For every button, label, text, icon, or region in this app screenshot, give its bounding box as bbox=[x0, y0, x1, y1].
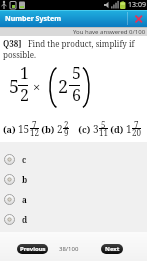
staticText: possible. bbox=[3, 49, 36, 60]
staticText: Q38] Find the product, simplify if bbox=[3, 38, 135, 49]
staticText: 2 bbox=[58, 74, 69, 99]
button[interactable]: d bbox=[0, 209, 147, 229]
staticText: (c) bbox=[69, 123, 93, 135]
staticText: 2 bbox=[64, 119, 69, 130]
staticText: 15 bbox=[18, 122, 30, 136]
staticText: 1 bbox=[20, 62, 29, 84]
button[interactable]: Next bbox=[101, 244, 123, 254]
staticText: 9 bbox=[64, 127, 69, 138]
staticText: 38/100 bbox=[59, 245, 79, 253]
staticText: 5 bbox=[72, 62, 81, 84]
staticText: d bbox=[22, 214, 28, 225]
staticText: 7 bbox=[32, 119, 37, 130]
staticText: 6 bbox=[72, 84, 81, 106]
staticText: You have answered 0/100 bbox=[73, 28, 146, 36]
staticText: 11 bbox=[99, 127, 108, 138]
staticText: 2 bbox=[57, 122, 63, 136]
staticText: 5 bbox=[101, 119, 106, 130]
staticText: c bbox=[22, 154, 27, 165]
staticText: (b) bbox=[39, 123, 57, 135]
staticText: 20 bbox=[132, 127, 141, 138]
button[interactable]: a bbox=[0, 189, 147, 209]
staticText: 13:09 bbox=[128, 0, 146, 10]
staticText: 12 bbox=[30, 127, 39, 138]
staticText: 7 bbox=[134, 119, 139, 130]
staticText: (a) bbox=[3, 123, 18, 135]
staticText: Next bbox=[105, 245, 120, 253]
staticText: Previous bbox=[20, 245, 46, 253]
staticText: a bbox=[22, 194, 27, 205]
staticText: × bbox=[33, 78, 41, 96]
button[interactable]: c bbox=[0, 149, 147, 169]
staticText: b bbox=[22, 174, 28, 185]
staticText: 3 bbox=[93, 122, 99, 136]
button[interactable]: b bbox=[0, 169, 147, 189]
staticText: (d) bbox=[108, 123, 126, 135]
staticText: Number System bbox=[5, 14, 62, 24]
staticText: 2 bbox=[20, 84, 29, 106]
button[interactable] bbox=[125, 10, 147, 27]
staticText: 5 bbox=[9, 74, 20, 99]
button[interactable]: Previous bbox=[17, 244, 48, 254]
staticText: 1 bbox=[126, 122, 132, 136]
